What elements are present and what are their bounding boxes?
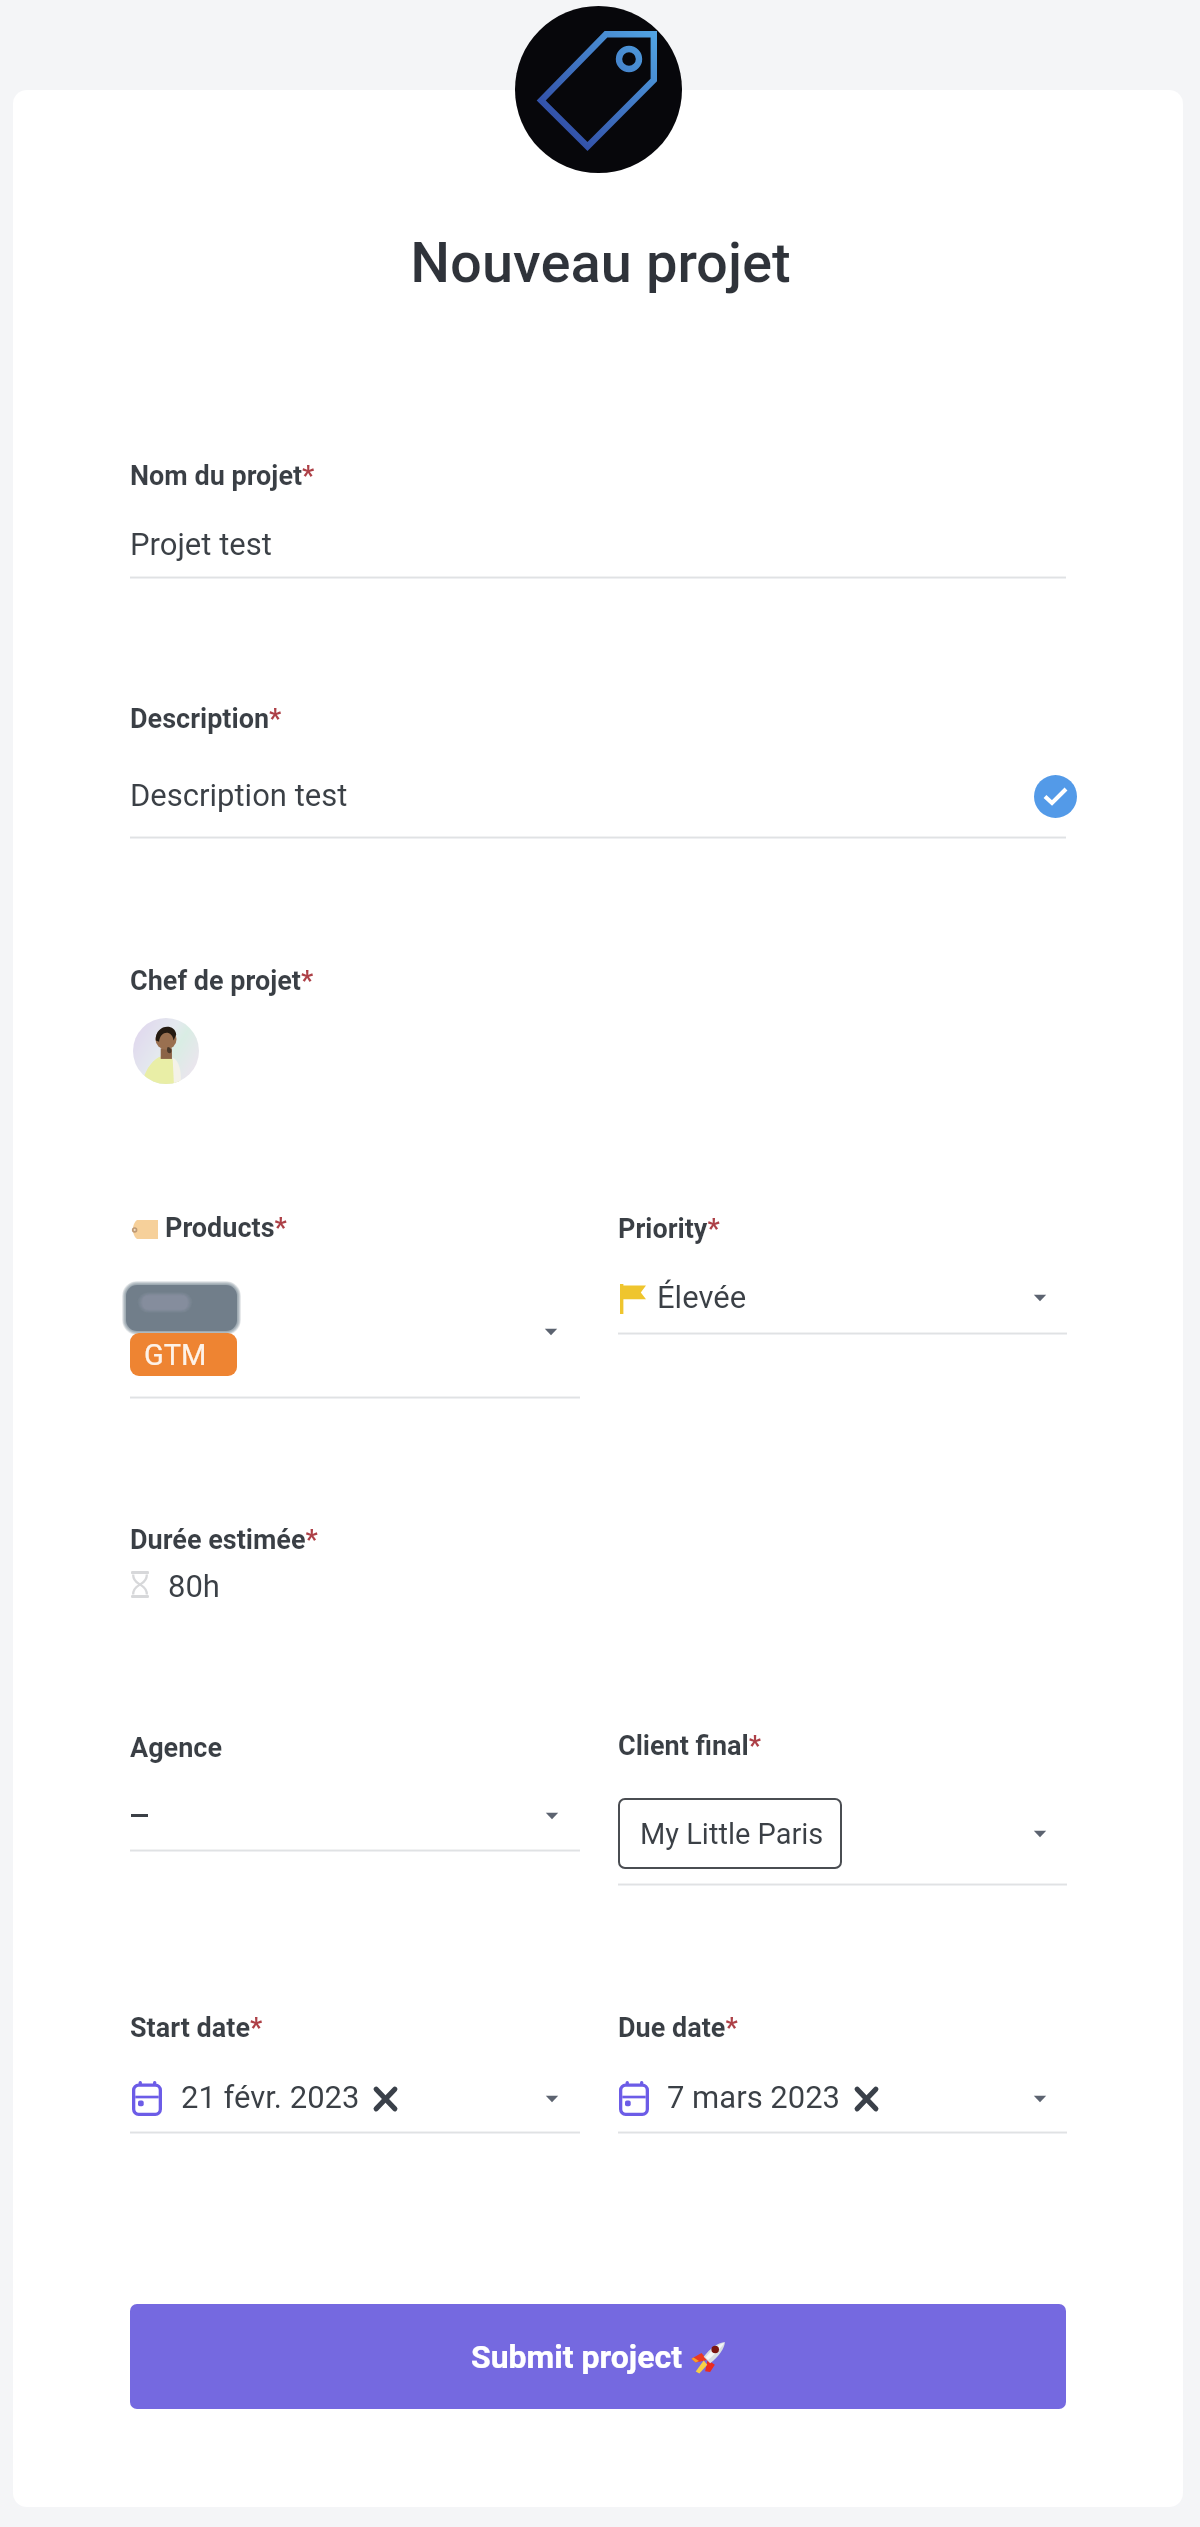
button[interactable]: Validated (1034, 775, 1077, 818)
button[interactable]: Open dropdown (535, 2082, 569, 2116)
button[interactable]: Due date field (618, 2072, 1067, 2128)
button[interactable]: My Little Paris (618, 1798, 842, 1869)
staticText: Client final* (618, 1730, 761, 1762)
button[interactable]: Open dropdown (1023, 2082, 1057, 2116)
button[interactable]: Start date field (130, 2072, 580, 2128)
staticText: Description* (130, 703, 282, 735)
staticText: Priority* (618, 1213, 720, 1245)
staticText: My Little Paris (640, 1817, 824, 1851)
staticText: Chef de projet* (130, 965, 314, 997)
button[interactable]: Submit project (130, 2304, 1066, 2409)
staticText: Products* (165, 1212, 287, 1244)
other: App logo (515, 6, 682, 173)
button[interactable]: Open dropdown (534, 1315, 568, 1349)
button[interactable]: Open dropdown (535, 1799, 569, 1833)
button[interactable]: Project manager avatar (133, 1018, 199, 1084)
button[interactable]: Product chip (121, 1280, 242, 1336)
staticText: GTM (144, 1338, 207, 1372)
staticText: Agence (130, 1732, 223, 1764)
staticText: 80h (168, 1568, 220, 1604)
button[interactable]: GTM (130, 1333, 237, 1376)
staticText: Durée estimée* (130, 1524, 318, 1556)
staticText: Nouveau projet (410, 230, 791, 296)
staticText: Due date* (618, 2012, 738, 2044)
button[interactable]: Clear date (855, 2087, 878, 2111)
button[interactable]: Description field (130, 770, 1010, 830)
staticText: 21 févr. 2023 (181, 2079, 360, 2115)
button[interactable]: Priority field (618, 1272, 1067, 1330)
staticText: 7 mars 2023 (667, 2079, 841, 2115)
staticText: Élevée (657, 1279, 747, 1315)
staticText: Start date* (130, 2012, 263, 2044)
button[interactable]: Estimated duration field (130, 1566, 580, 1606)
button[interactable]: Clear date (374, 2087, 397, 2111)
staticText: Nom du projet* (130, 460, 315, 492)
button[interactable]: Open dropdown (1023, 1817, 1057, 1851)
button[interactable]: Agency field (130, 1790, 580, 1846)
staticText: Submit project (471, 2338, 682, 2376)
button[interactable]: Open dropdown (1023, 1281, 1057, 1315)
staticText: Projet test (130, 526, 272, 562)
button[interactable]: Nom du projet field (130, 520, 1066, 578)
staticText: Description test (130, 777, 348, 813)
